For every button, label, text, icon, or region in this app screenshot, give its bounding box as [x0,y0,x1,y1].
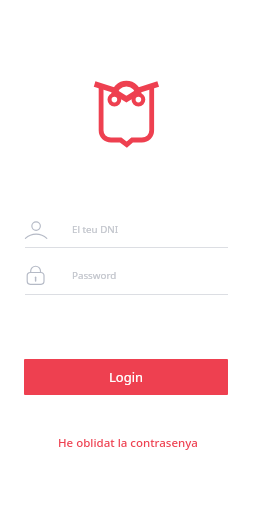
staticText: Login [109,368,144,386]
button[interactable]: Password [25,258,228,294]
button[interactable]: Login [24,359,228,395]
staticText: El teu DNI [72,223,119,236]
button[interactable]: He oblidat la contrasenya [0,431,256,455]
button[interactable]: El teu DNI [25,212,228,248]
staticText: Password [72,269,117,282]
staticText: He oblidat la contrasenya [58,435,198,451]
